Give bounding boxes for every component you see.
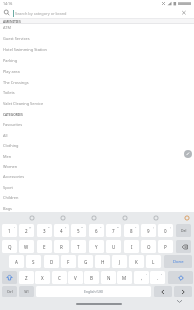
staticText: English (UK) <box>84 289 104 294</box>
button[interactable] <box>60 215 66 221</box>
button[interactable]: C <box>52 271 67 284</box>
button[interactable]: E <box>37 240 52 253</box>
staticText: Hotel Swimming Station <box>3 47 48 52</box>
button[interactable] <box>168 271 193 284</box>
button[interactable]: . <box>150 271 165 284</box>
button[interactable]: N <box>101 271 116 284</box>
button[interactable]: 9 <box>141 224 156 237</box>
button[interactable]: G <box>78 255 93 268</box>
staticText: ( <box>153 225 154 228</box>
button[interactable]: M <box>117 271 132 284</box>
button[interactable]: !#1 <box>19 286 34 297</box>
staticText: J <box>119 259 121 265</box>
button[interactable]: F <box>61 255 76 268</box>
button[interactable]: Guest Services <box>0 33 194 44</box>
button[interactable] <box>29 215 35 221</box>
button[interactable]: Q <box>2 240 17 253</box>
button[interactable]: U <box>106 240 121 253</box>
staticText: Valet Cleaning Service <box>3 101 44 106</box>
button[interactable]: 6 <box>89 224 104 237</box>
button[interactable]: English (UK) <box>36 286 151 297</box>
button[interactable]: I <box>124 240 139 253</box>
button[interactable]: O <box>141 240 156 253</box>
button[interactable] <box>176 240 191 253</box>
staticText: 2 <box>25 228 28 234</box>
button[interactable] <box>184 150 192 158</box>
button[interactable]: Del <box>176 224 191 237</box>
button[interactable] <box>176 299 183 304</box>
button[interactable]: J <box>112 255 127 268</box>
button[interactable]: Hotel Swimming Station <box>0 44 194 55</box>
button[interactable] <box>0 8 194 18</box>
button[interactable]: W <box>19 240 34 253</box>
staticText: V <box>74 275 77 281</box>
staticText: F <box>67 259 70 265</box>
button[interactable]: Play area <box>0 66 194 77</box>
button[interactable]: Done <box>164 255 192 268</box>
button[interactable]: V <box>68 271 83 284</box>
button[interactable]: P <box>158 240 173 253</box>
button[interactable]: 1 <box>2 224 17 237</box>
button[interactable]: 7 <box>106 224 121 237</box>
button[interactable]: H <box>95 255 110 268</box>
staticText: % <box>81 225 84 228</box>
button[interactable]: K <box>129 255 144 268</box>
staticText: Y <box>95 244 98 250</box>
button[interactable]: Accessories <box>0 171 194 182</box>
button[interactable]: S <box>26 255 41 268</box>
button[interactable]: R <box>54 240 69 253</box>
button[interactable]: Clothing <box>0 140 194 151</box>
button[interactable]: Men <box>0 151 194 162</box>
button[interactable]: B <box>84 271 99 284</box>
button[interactable] <box>184 215 190 221</box>
button[interactable]: L <box>146 255 161 268</box>
button[interactable]: 2 <box>19 224 34 237</box>
staticText: ! <box>14 225 15 228</box>
button[interactable]: Sport <box>0 182 194 193</box>
button[interactable] <box>153 215 159 221</box>
button[interactable]: , <box>134 271 149 284</box>
staticText: U <box>112 244 116 250</box>
button[interactable]: Children <box>0 192 194 203</box>
button[interactable] <box>174 286 192 297</box>
button[interactable]: Parking <box>0 55 194 66</box>
staticText: Toilets <box>3 90 15 95</box>
staticText: B <box>90 275 93 281</box>
staticText: H <box>101 259 105 265</box>
button[interactable]: Z <box>19 271 34 284</box>
button[interactable]: Women <box>0 161 194 172</box>
staticText: K <box>135 259 138 265</box>
staticText: E <box>43 244 46 250</box>
button[interactable]: A <box>9 255 24 268</box>
button[interactable]: All <box>0 130 194 141</box>
button[interactable]: 5 <box>71 224 86 237</box>
staticText: AMENITIES <box>3 19 21 23</box>
button[interactable]: X <box>35 271 50 284</box>
button[interactable] <box>91 215 97 221</box>
button[interactable]: The Crossings <box>0 77 194 88</box>
button[interactable] <box>122 215 128 221</box>
staticText: X <box>41 275 44 281</box>
button[interactable]: D <box>44 255 59 268</box>
button[interactable]: 0 <box>158 224 173 237</box>
staticText: @ <box>29 225 32 228</box>
button[interactable]: ATM <box>0 22 194 33</box>
staticText: D <box>50 259 54 265</box>
button[interactable]: Y <box>89 240 104 253</box>
button[interactable]: Valet Cleaning Service <box>0 98 194 109</box>
staticText: 9 <box>147 228 150 234</box>
button[interactable]: 3 <box>37 224 52 237</box>
staticText: G <box>84 259 88 265</box>
button[interactable]: Ctrl <box>2 286 17 297</box>
button[interactable] <box>2 271 17 284</box>
button[interactable] <box>180 9 188 17</box>
button[interactable] <box>154 286 172 297</box>
button[interactable]: 8 <box>124 224 139 237</box>
staticText: ATM <box>3 25 11 30</box>
button[interactable]: Favourites <box>0 119 194 130</box>
button[interactable]: T <box>71 240 86 253</box>
button[interactable]: Toilets <box>0 87 194 98</box>
button[interactable]: Bags <box>0 203 194 214</box>
staticText: The Crossings <box>3 80 29 85</box>
button[interactable]: 4 <box>54 224 69 237</box>
